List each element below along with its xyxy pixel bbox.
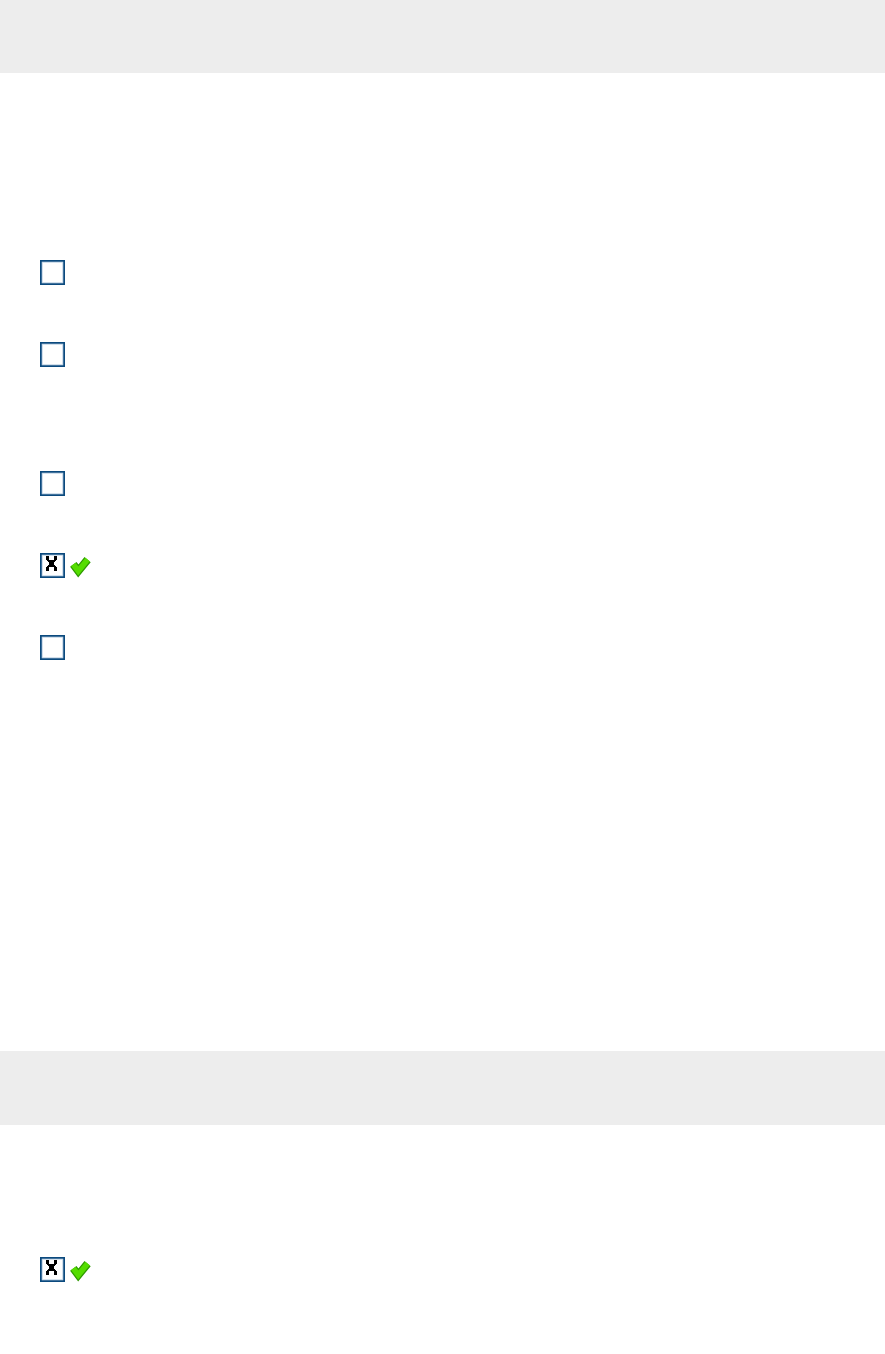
button[interactable]: Broken image with check — [40, 553, 91, 578]
button[interactable]: Broken image with check — [40, 1257, 91, 1282]
button[interactable]: Broken image — [40, 260, 65, 285]
button[interactable]: Broken image — [40, 471, 65, 496]
button[interactable]: Broken image — [40, 635, 65, 660]
button[interactable]: Broken image — [40, 342, 65, 367]
